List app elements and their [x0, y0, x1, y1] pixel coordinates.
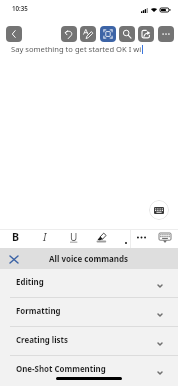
staticText: U	[70, 230, 78, 244]
staticText: Formatting	[16, 306, 61, 317]
button[interactable]: Bold	[8, 230, 24, 244]
button[interactable]: Creating lists	[0, 327, 178, 356]
button[interactable]: Spelling	[80, 26, 96, 42]
staticText: B	[12, 230, 20, 244]
staticText: One-Shot Commenting	[16, 364, 106, 375]
button[interactable]: Underline	[66, 230, 82, 244]
button[interactable]: More formatting	[133, 230, 149, 244]
button[interactable]: More options	[158, 26, 174, 42]
button[interactable]: Show keyboard	[149, 200, 169, 220]
button[interactable]: Back	[6, 26, 22, 42]
staticText: All voice commands	[49, 253, 129, 264]
staticText: Creating lists	[16, 335, 68, 346]
button[interactable]: Share	[138, 26, 154, 42]
button[interactable]: Hide keyboard	[157, 230, 173, 244]
button[interactable]: Italic	[37, 230, 53, 244]
staticText: 10:35	[12, 4, 28, 12]
button[interactable]: Undo	[61, 26, 77, 42]
button[interactable]: Highlight	[93, 230, 109, 244]
button[interactable]: Close	[7, 252, 21, 266]
button[interactable]: Editing	[0, 269, 178, 298]
button[interactable]: One-Shot Commenting	[0, 356, 178, 385]
staticText: Editing	[16, 277, 44, 288]
button[interactable]: Select	[100, 26, 116, 42]
staticText: I	[43, 230, 47, 244]
button[interactable]: Formatting	[0, 298, 178, 327]
staticText: Say something to get started OK I wi	[11, 44, 142, 54]
button[interactable]: Search	[119, 26, 135, 42]
